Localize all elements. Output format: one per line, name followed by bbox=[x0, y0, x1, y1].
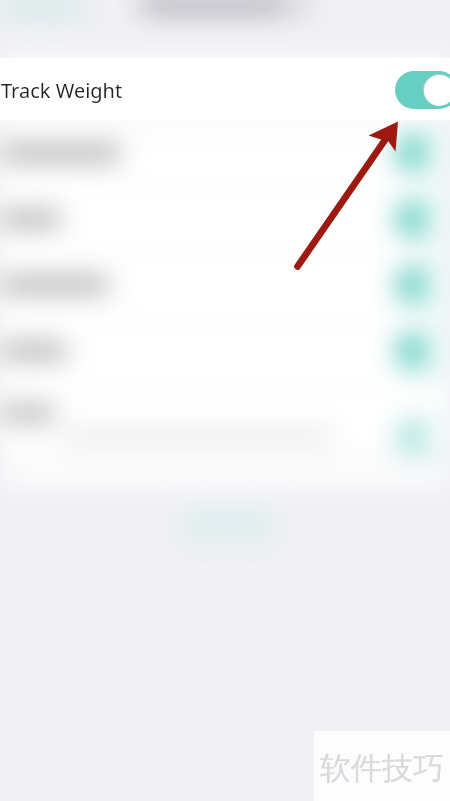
staticText: Track Weight bbox=[1, 77, 123, 104]
button[interactable]: Track Weight toggle bbox=[395, 71, 450, 109]
button[interactable]: Track Weight bbox=[0, 58, 450, 120]
staticText: 软件技巧 bbox=[320, 749, 444, 788]
